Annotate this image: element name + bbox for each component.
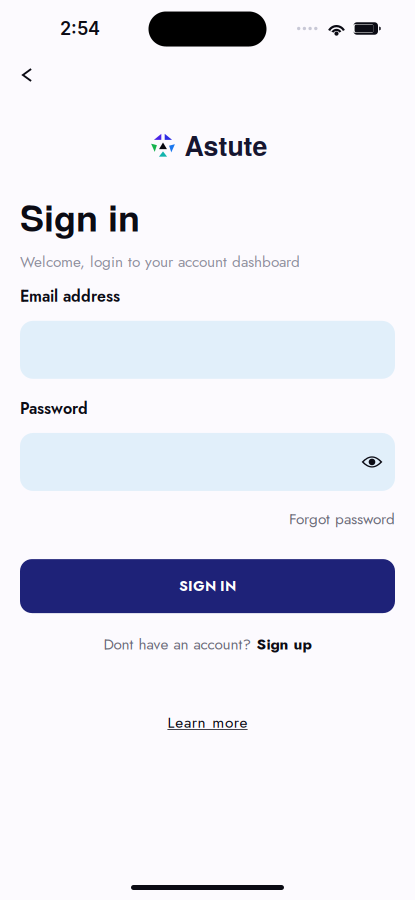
staticText: Welcome, login to your account dashboard xyxy=(20,251,300,273)
button[interactable]: Sign up xyxy=(256,633,311,655)
button[interactable]: Learn more xyxy=(157,711,257,733)
button[interactable]: Show password xyxy=(355,445,389,479)
staticText: Learn more xyxy=(167,711,248,733)
button[interactable]: Forgot password xyxy=(289,508,395,530)
staticText: Sign in xyxy=(20,191,140,243)
staticText: Password xyxy=(20,397,88,420)
staticText: Dont have an account? xyxy=(103,633,251,655)
staticText: 2:54 xyxy=(60,18,100,39)
button[interactable]: SIGN IN xyxy=(20,559,395,613)
staticText: Sign up xyxy=(256,633,311,655)
staticText: Astute xyxy=(184,126,267,164)
staticText: Email address xyxy=(20,285,120,308)
staticText: Forgot password xyxy=(289,508,395,530)
staticText: SIGN IN xyxy=(179,576,236,596)
button[interactable]: Back xyxy=(8,56,46,94)
